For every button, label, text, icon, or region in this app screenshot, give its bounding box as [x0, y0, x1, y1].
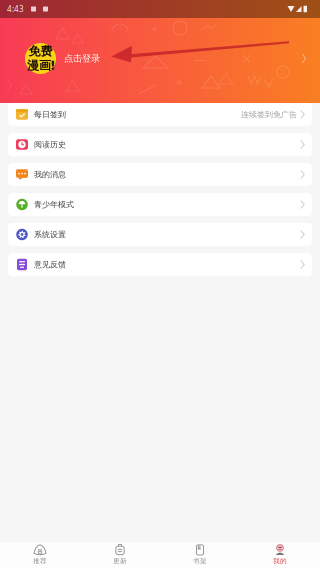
staticText: 4:43	[7, 4, 24, 14]
staticText: 更新	[113, 557, 127, 565]
staticText: 推荐	[33, 557, 47, 565]
button[interactable]: 我的	[240, 541, 320, 568]
staticText: 点击登录	[64, 53, 100, 64]
button[interactable]: 每日签到	[8, 103, 312, 126]
staticText: 漫画!	[27, 57, 54, 73]
staticText: 青少年模式	[34, 200, 74, 209]
button[interactable]: 青少年模式	[8, 193, 312, 216]
staticText: 每日签到	[34, 110, 66, 119]
staticText: 免费	[28, 44, 52, 59]
staticText: 我的消息	[34, 170, 66, 179]
staticText: 我的	[273, 557, 287, 565]
button[interactable]: 系统设置	[8, 223, 312, 246]
button[interactable]: 我的消息	[8, 163, 312, 186]
button[interactable]: 书架	[160, 541, 240, 568]
staticText: 连续签到免广告	[241, 110, 297, 119]
button[interactable]: 阅读历史	[8, 133, 312, 156]
staticText: 阅读历史	[34, 140, 66, 149]
staticText: 意见反馈	[34, 260, 66, 269]
button[interactable]: 推荐	[0, 541, 80, 568]
button[interactable]: 更新	[80, 541, 160, 568]
staticText: 书架	[193, 557, 207, 565]
staticText: 系统设置	[34, 230, 66, 239]
button[interactable]: 意见反馈	[8, 253, 312, 276]
